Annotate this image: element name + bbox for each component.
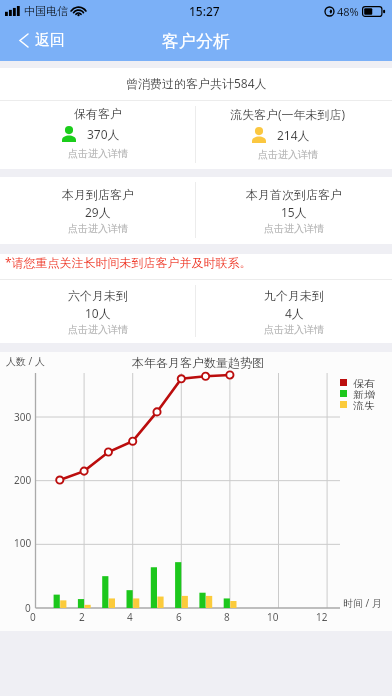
staticText: 点击进入详情 [264, 222, 324, 235]
staticText: 10 [267, 610, 279, 624]
staticText: 0 [30, 610, 36, 624]
button[interactable]: 保有客户 [0, 101, 195, 169]
staticText: 点击进入详情 [68, 147, 128, 160]
staticText: 流失客户(一年未到店) [230, 106, 346, 122]
staticText: 48% [337, 4, 359, 19]
staticText: 返回 [35, 31, 65, 50]
staticText: 10人 [85, 305, 111, 321]
staticText: 保有客户 [74, 106, 122, 121]
staticText: 六个月未到 [68, 288, 128, 303]
button[interactable]: 本月首次到店客户 [196, 177, 392, 244]
staticText: 29人 [85, 204, 111, 220]
staticText: 中国电信 [24, 4, 68, 18]
staticText: 0 [25, 601, 31, 615]
staticText: 曾消费过的客户共计584人 [126, 75, 267, 91]
button[interactable]: 六个月未到 [0, 280, 195, 343]
staticText: 时间 / 月 [343, 596, 382, 610]
staticText: 流失 [353, 399, 375, 410]
staticText: 本年各月客户数量趋势图 [132, 355, 264, 370]
staticText: 客户分析 [162, 31, 230, 52]
staticText: 本月到店客户 [62, 187, 134, 202]
button[interactable]: 返回 [0, 25, 79, 56]
staticText: 九个月未到 [264, 288, 324, 303]
staticText: 本月首次到店客户 [246, 187, 342, 202]
staticText: 人数 / 人 [6, 354, 45, 368]
staticText: 4 [127, 610, 133, 624]
staticText: 新增 [353, 388, 375, 399]
staticText: 214人 [277, 127, 310, 143]
button[interactable]: 九个月未到 [196, 280, 392, 343]
staticText: 6 [176, 610, 182, 624]
staticText: 12 [316, 610, 328, 624]
staticText: 点击进入详情 [258, 148, 318, 161]
staticText: 2 [79, 610, 85, 624]
staticText: 点击进入详情 [68, 323, 128, 336]
staticText: 15:27 [189, 3, 220, 19]
staticText: 8 [224, 610, 230, 624]
staticText: 200 [14, 473, 32, 487]
button[interactable]: 流失客户(一年未到店) [196, 101, 392, 169]
staticText: *请您重点关注长时间未到店客户并及时联系。 [5, 254, 252, 270]
staticText: 300 [14, 410, 32, 424]
staticText: 4人 [285, 305, 304, 321]
staticText: 370人 [87, 126, 120, 142]
staticText: 保有 [353, 377, 375, 388]
staticText: 点击进入详情 [264, 323, 324, 336]
staticText: 点击进入详情 [68, 222, 128, 235]
button[interactable]: 本月到店客户 [0, 177, 195, 244]
staticText: 15人 [281, 204, 307, 220]
staticText: 100 [14, 536, 32, 550]
